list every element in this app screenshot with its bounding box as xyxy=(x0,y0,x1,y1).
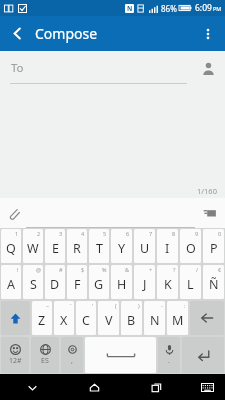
button[interactable]: ~ xyxy=(32,301,52,335)
staticText: V xyxy=(105,312,113,329)
staticText: W xyxy=(27,240,39,257)
staticText: Q xyxy=(6,240,16,257)
staticText: ' xyxy=(92,302,94,309)
button[interactable]: 0 xyxy=(203,229,224,263)
staticText: 6 xyxy=(126,230,130,237)
staticText: M xyxy=(172,312,184,329)
staticText: 0 xyxy=(218,230,222,237)
staticText: S xyxy=(30,276,37,293)
button[interactable]: ? xyxy=(157,265,178,299)
staticText: F xyxy=(74,276,81,293)
button[interactable]: / xyxy=(180,265,201,299)
button[interactable]: 2 xyxy=(23,229,43,263)
staticText: P xyxy=(210,240,218,257)
button[interactable]: . xyxy=(158,337,180,373)
button[interactable]: Attach xyxy=(0,198,26,228)
staticText: 3 xyxy=(59,230,63,237)
staticText: 12# xyxy=(9,356,22,366)
button[interactable]: @ xyxy=(23,265,43,299)
staticText: N xyxy=(150,312,160,329)
staticText: ! xyxy=(17,266,19,273)
button[interactable]: 1 xyxy=(1,229,21,263)
button[interactable]: ' xyxy=(76,301,96,335)
button[interactable]: 7 xyxy=(134,229,155,263)
staticText: 1 xyxy=(15,230,19,237)
staticText: J xyxy=(143,276,147,293)
staticText: ~ xyxy=(46,302,50,309)
button[interactable]: % xyxy=(89,265,109,299)
button[interactable]: space xyxy=(85,337,156,373)
button[interactable]: shift xyxy=(1,301,30,335)
button[interactable]: € xyxy=(203,265,224,299)
button[interactable]: 5 xyxy=(89,229,109,263)
button[interactable]: back xyxy=(190,301,224,335)
button[interactable]: Back xyxy=(0,16,35,51)
staticText: , xyxy=(71,356,73,366)
staticText: G xyxy=(94,276,104,293)
staticText: % xyxy=(102,266,107,273)
button[interactable]: 8 xyxy=(157,229,178,263)
button[interactable]: $ xyxy=(67,265,87,299)
button[interactable]: enter xyxy=(182,337,224,373)
staticText: $ xyxy=(81,266,85,273)
staticText: : xyxy=(184,302,186,309)
button[interactable]: Home xyxy=(81,374,107,400)
button[interactable]: Switch keyboard xyxy=(194,374,220,400)
button[interactable]: Recents xyxy=(143,374,169,400)
staticText: ) xyxy=(138,302,140,309)
staticText: I xyxy=(165,240,170,257)
staticText: H xyxy=(117,276,127,293)
staticText: / xyxy=(196,266,199,273)
button[interactable]: # xyxy=(45,265,65,299)
staticText: + xyxy=(149,266,153,273)
staticText: R xyxy=(73,240,81,257)
staticText: @ xyxy=(36,266,41,273)
staticText: N xyxy=(127,4,133,13)
staticText: U xyxy=(140,240,150,257)
button[interactable]: , xyxy=(61,337,83,373)
staticText: 86% xyxy=(161,3,177,14)
staticText: 6:09 xyxy=(195,2,212,14)
staticText: ` xyxy=(70,302,72,309)
staticText: X xyxy=(60,312,68,329)
button[interactable]: Hide keyboard xyxy=(19,374,45,400)
button[interactable]: Send xyxy=(195,198,225,228)
button[interactable]: 9 xyxy=(180,229,201,263)
staticText: T xyxy=(96,240,103,257)
button[interactable]: - xyxy=(144,301,165,335)
button[interactable]: + xyxy=(134,265,155,299)
staticText: A xyxy=(7,276,15,293)
button[interactable]: 4 xyxy=(67,229,87,263)
staticText: C xyxy=(82,312,90,329)
staticText: 7 xyxy=(149,230,153,237)
staticText: ? xyxy=(173,266,176,273)
staticText: 4 xyxy=(81,230,85,237)
button[interactable]: ) xyxy=(121,301,142,335)
staticText: 9 xyxy=(195,230,199,237)
staticText: To xyxy=(11,60,24,76)
button[interactable]: 12# xyxy=(1,337,29,373)
staticText: O xyxy=(186,240,196,257)
button[interactable]: Pick contact xyxy=(197,57,219,79)
staticText: 8 xyxy=(172,230,176,237)
staticText: ES xyxy=(41,356,49,366)
staticText: Y xyxy=(118,240,126,257)
button[interactable]: ! xyxy=(1,265,21,299)
button[interactable]: : xyxy=(167,301,188,335)
button[interactable]: ES xyxy=(31,337,59,373)
staticText: Z xyxy=(38,312,46,329)
staticText: Ñ xyxy=(209,276,219,293)
staticText: PM xyxy=(213,5,222,12)
button[interactable]: ( xyxy=(98,301,119,335)
staticText: E xyxy=(52,240,59,257)
staticText: & xyxy=(125,266,130,273)
button[interactable]: More options xyxy=(190,16,225,51)
button[interactable]: ` xyxy=(54,301,74,335)
staticText: ( xyxy=(115,302,117,309)
staticText: D xyxy=(50,276,60,293)
button[interactable]: 6 xyxy=(111,229,132,263)
button[interactable]: & xyxy=(111,265,132,299)
staticText: B xyxy=(127,312,136,329)
button[interactable]: 3 xyxy=(45,229,65,263)
staticText: 1/160 xyxy=(197,186,217,196)
